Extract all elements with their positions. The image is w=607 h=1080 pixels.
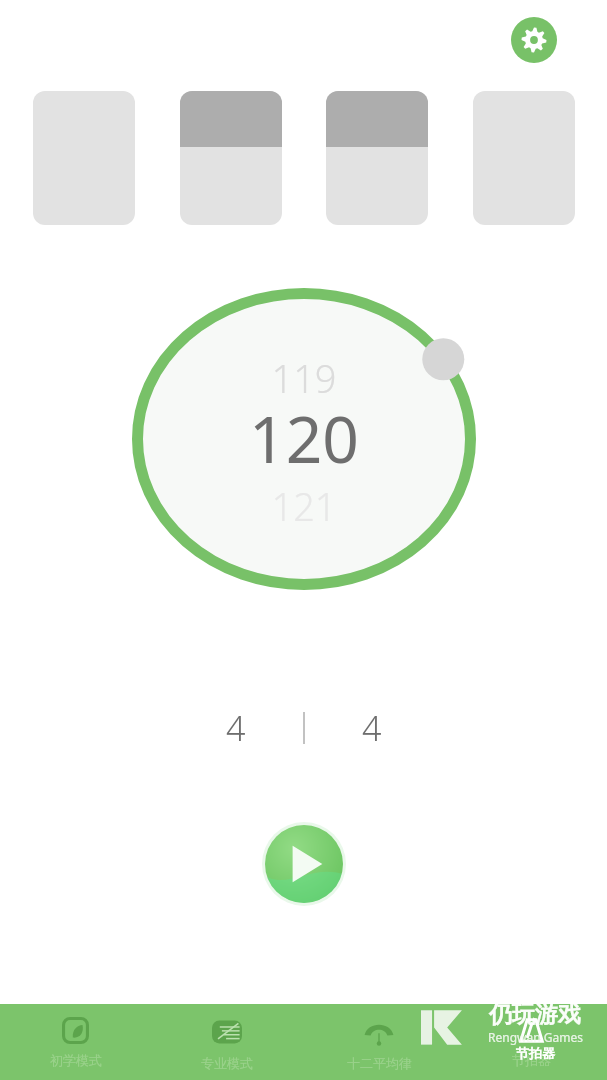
button[interactable]: 节拍器: [455, 1004, 607, 1080]
staticText: 初学模式: [50, 1052, 102, 1068]
staticText: 121: [271, 480, 337, 532]
staticText: 节拍器: [512, 1052, 551, 1068]
staticText: 仍玩游戏: [489, 1000, 581, 1029]
button[interactable]: Play: [262, 822, 346, 906]
staticText: 4: [226, 705, 246, 751]
staticText: 4: [362, 705, 382, 751]
button[interactable]: [180, 91, 282, 225]
staticText: 专业模式: [201, 1055, 253, 1071]
staticText: Rengwan Games: [488, 1029, 583, 1045]
button[interactable]: [326, 91, 428, 225]
button[interactable]: 十二平均律: [303, 1004, 455, 1080]
staticText: 节拍器: [516, 1045, 555, 1061]
button[interactable]: 119: [124, 284, 484, 594]
button[interactable]: 4: [334, 700, 410, 756]
staticText: 120: [249, 395, 359, 482]
button[interactable]: 4: [198, 700, 274, 756]
staticText: 十二平均律: [347, 1055, 412, 1071]
button[interactable]: 初学模式: [0, 1004, 151, 1080]
staticText: 119: [271, 352, 337, 404]
button[interactable]: 专业模式: [151, 1004, 303, 1080]
button[interactable]: Settings: [511, 17, 557, 63]
